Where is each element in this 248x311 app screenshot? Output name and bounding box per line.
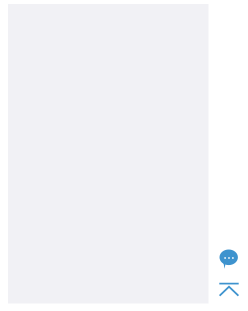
button[interactable]: Comments	[214, 244, 243, 273]
button[interactable]: Scroll to top	[214, 273, 243, 305]
